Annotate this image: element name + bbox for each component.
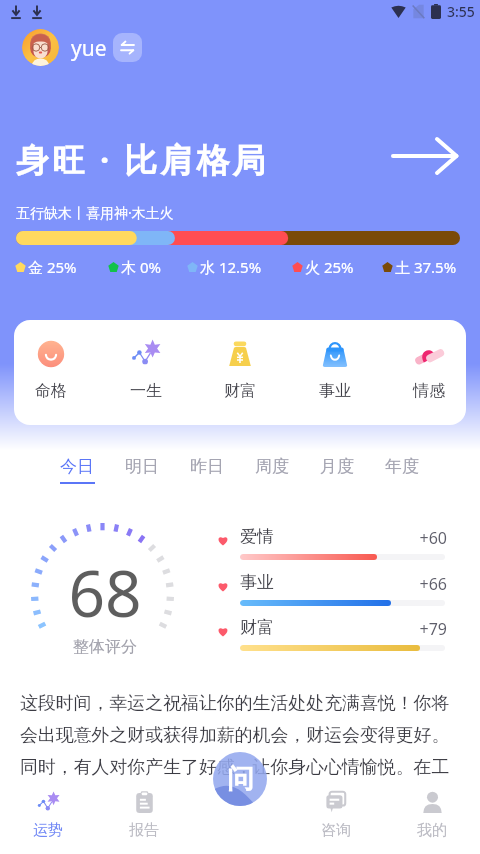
- staticText: 68: [35, 549, 175, 636]
- staticText: 这段时间，幸运之祝福让你的生活处处充满喜悦！你将会出现意外之财或获得加薪的机会，…: [20, 692, 461, 778]
- staticText: 周度: [255, 456, 289, 477]
- button[interactable]: 今日: [51, 456, 103, 484]
- button[interactable]: Switch profile: [113, 33, 142, 62]
- staticText: 木 0%: [121, 257, 161, 277]
- button[interactable]: 事业: [303, 339, 367, 409]
- button[interactable]: 月度: [311, 456, 363, 484]
- staticText: 月度: [320, 456, 354, 477]
- staticText: 命格: [35, 381, 67, 401]
- button[interactable]: 事业: [214, 570, 447, 612]
- button[interactable]: 报告: [112, 791, 176, 851]
- staticText: 报告: [129, 821, 159, 840]
- staticText: 年度: [385, 456, 419, 477]
- staticText: +66: [364, 573, 447, 595]
- staticText: 火 25%: [305, 257, 354, 277]
- button[interactable]: 明日: [116, 456, 168, 484]
- staticText: 问: [227, 762, 254, 796]
- staticText: 土 37.5%: [395, 257, 457, 277]
- button[interactable]: View details: [385, 133, 465, 179]
- staticText: 财富: [240, 617, 274, 638]
- staticText: 事业: [240, 572, 274, 593]
- staticText: 昨日: [190, 456, 224, 477]
- button[interactable]: Profile avatar: [22, 29, 59, 66]
- staticText: 情感: [413, 381, 445, 401]
- staticText: 爱情: [240, 526, 274, 547]
- staticText: 事业: [319, 381, 351, 401]
- staticText: 整体评分: [35, 637, 175, 657]
- button[interactable]: Ask assistant: [213, 752, 267, 806]
- staticText: 财富: [224, 381, 256, 401]
- staticText: 运势: [33, 821, 63, 840]
- button[interactable]: 情感: [397, 339, 461, 409]
- button[interactable]: 财富: [208, 339, 272, 409]
- staticText: 水 12.5%: [200, 257, 262, 277]
- button[interactable]: 命格: [19, 339, 83, 409]
- button[interactable]: 爱情: [214, 524, 447, 566]
- button[interactable]: 昨日: [181, 456, 233, 484]
- staticText: 我的: [417, 821, 447, 840]
- button[interactable]: 运势: [16, 791, 80, 851]
- button[interactable]: 我的: [400, 791, 464, 851]
- staticText: 今日: [60, 456, 94, 477]
- staticText: 3:55: [447, 2, 475, 21]
- button[interactable]: 财富: [214, 615, 447, 657]
- staticText: 明日: [125, 456, 159, 477]
- staticText: 咨询: [321, 821, 351, 840]
- button[interactable]: 一生: [114, 339, 178, 409]
- staticText: 五行缺木丨喜用神·木土火: [16, 203, 174, 222]
- staticText: yue: [71, 34, 107, 63]
- staticText: +79: [364, 618, 447, 640]
- button[interactable]: 咨询: [304, 791, 368, 851]
- staticText: 一生: [130, 381, 162, 401]
- staticText: 身旺 · 比肩格局: [16, 137, 269, 182]
- button[interactable]: 年度: [376, 456, 428, 484]
- staticText: +60: [364, 527, 447, 549]
- staticText: 金 25%: [28, 257, 77, 277]
- button[interactable]: 周度: [246, 456, 298, 484]
